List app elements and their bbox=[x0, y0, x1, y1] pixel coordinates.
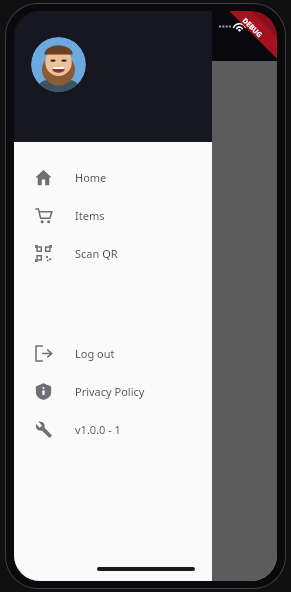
staticText: My Shop bbox=[26, 67, 100, 92]
staticText: Privacy Policy bbox=[75, 384, 145, 399]
staticText: v1.0.0 - 1 bbox=[75, 422, 121, 437]
staticText: Log out bbox=[75, 346, 115, 361]
button[interactable]: Items bbox=[14, 196, 212, 234]
staticText: Home bbox=[75, 170, 107, 185]
button[interactable]: Scan QR bbox=[14, 234, 212, 272]
staticText: Scan QR bbox=[75, 246, 118, 261]
staticText: View new bbox=[26, 204, 75, 219]
staticText: Add new bbox=[26, 161, 71, 176]
staticText: DEBUG bbox=[231, 11, 273, 49]
button[interactable]: Privacy Policy bbox=[14, 372, 212, 410]
button[interactable]: v1.0.0 - 1 bbox=[14, 410, 212, 448]
button[interactable]: Profile avatar bbox=[31, 37, 86, 92]
button[interactable]: Log out bbox=[14, 334, 212, 372]
staticText: Items bbox=[75, 208, 105, 223]
button[interactable]: Home bbox=[14, 158, 212, 196]
